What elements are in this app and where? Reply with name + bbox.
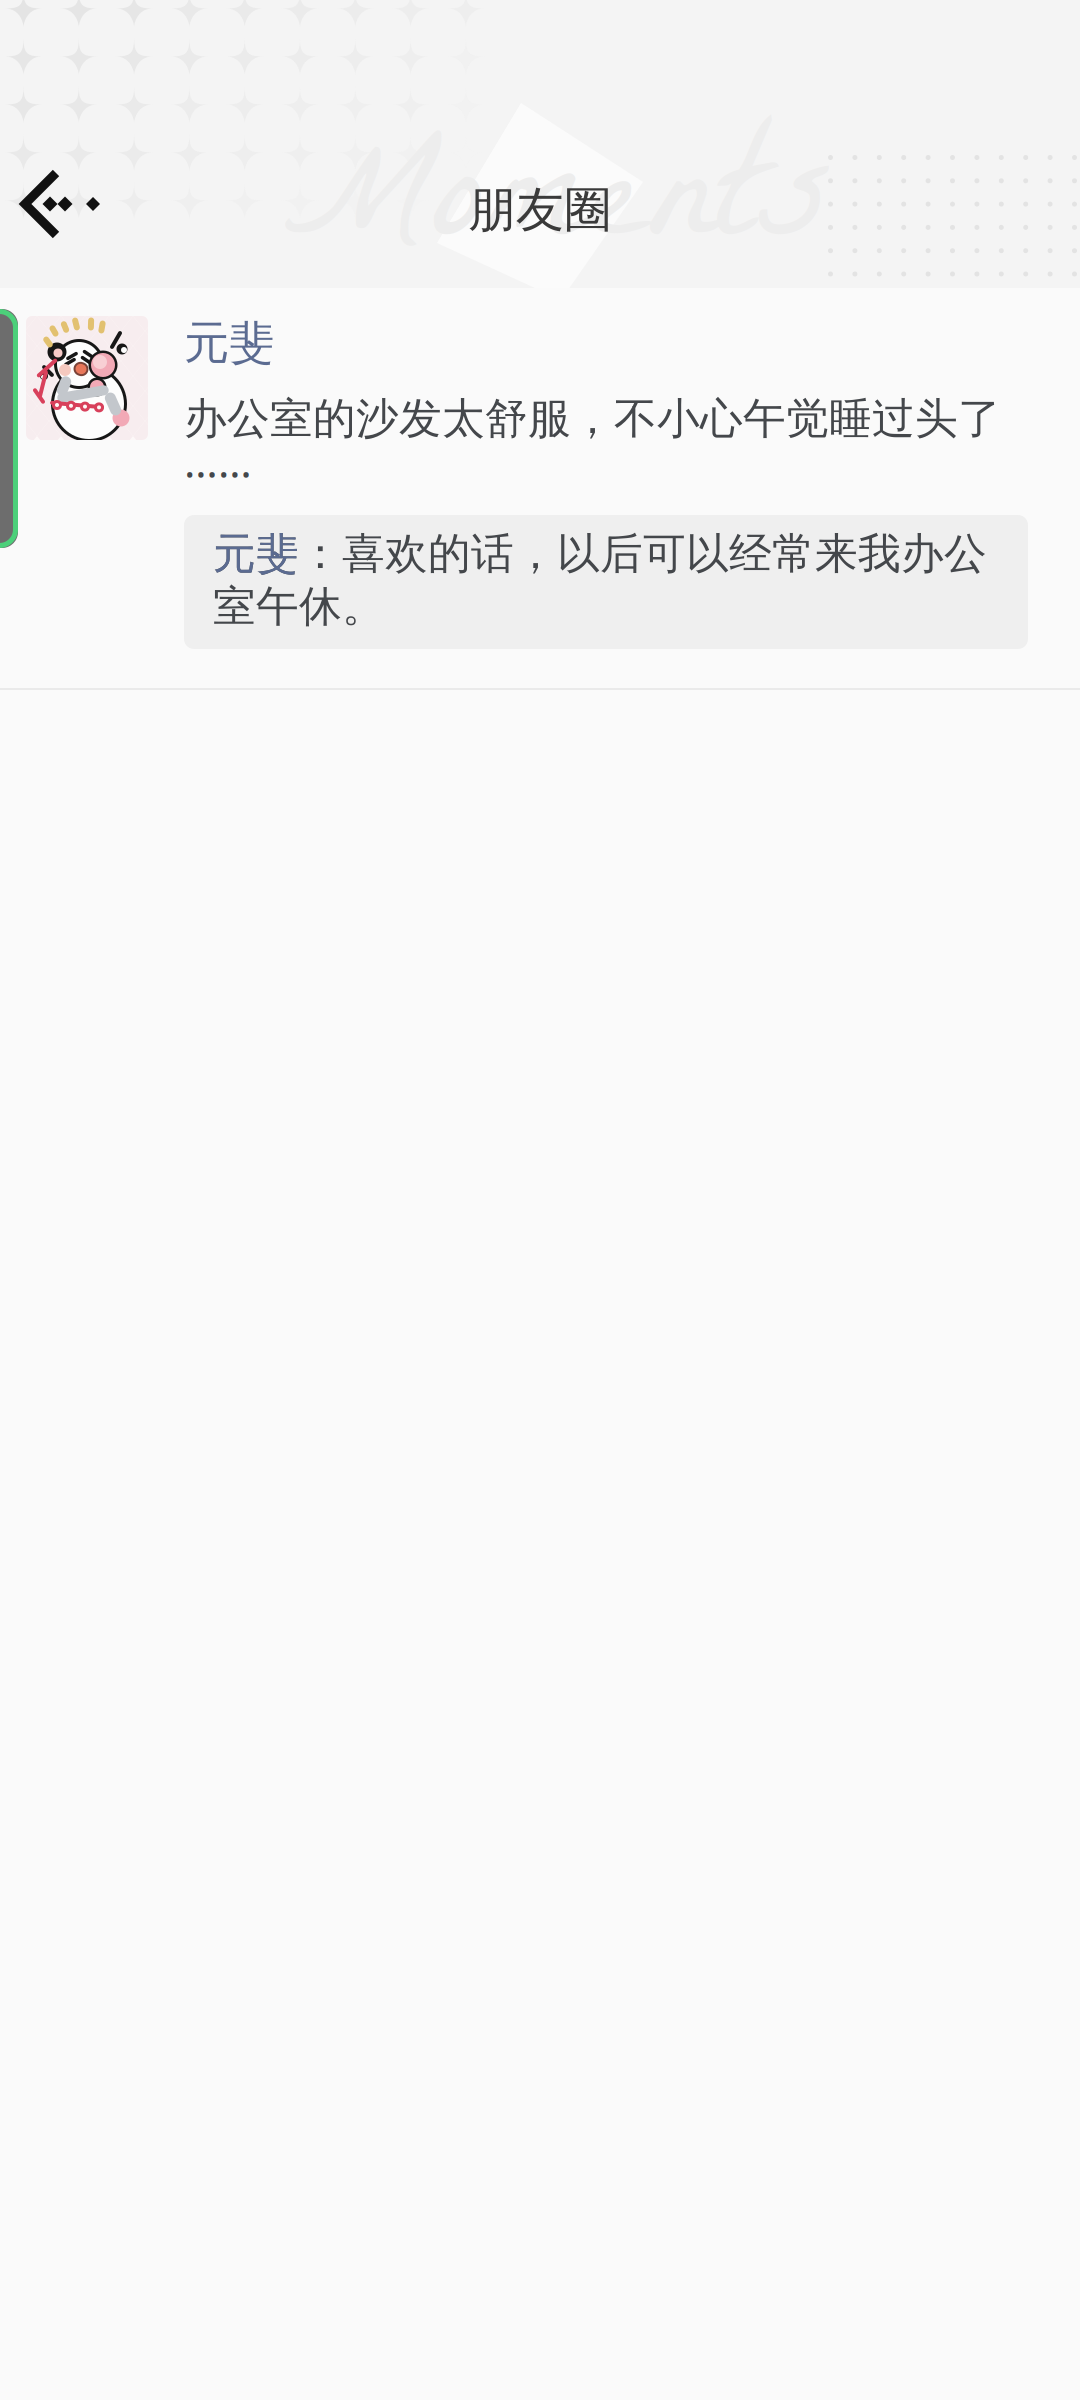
staticText: 办公室的沙发太舒服，不小心午觉睡过头了​…… (184, 388, 1001, 490)
staticText: Moments (282, 62, 832, 358)
staticText: 元斐：喜欢的话，以后可以经常来我办公室午休。 (213, 527, 987, 633)
button[interactable]: Back (0, 144, 170, 274)
staticText: 元斐 (184, 314, 274, 371)
button[interactable]: 元斐 (0, 288, 1080, 690)
staticText: 元斐 (213, 527, 299, 581)
staticText: 朋友圈 (468, 180, 612, 240)
